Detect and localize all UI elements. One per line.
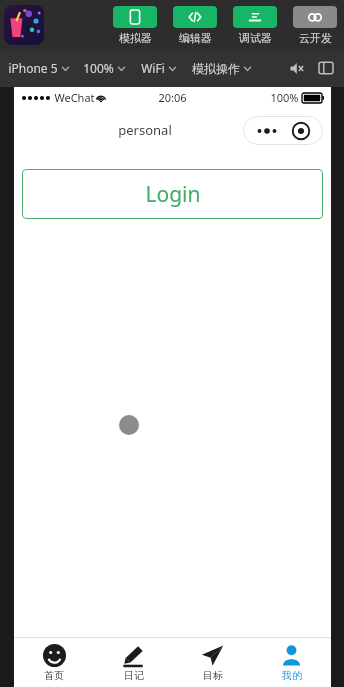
staticText: WeChat <box>54 90 95 105</box>
staticText: 模拟操作 <box>192 61 240 76</box>
button[interactable]: 100% <box>81 56 127 80</box>
staticText: 100% <box>83 60 114 76</box>
staticText: 编辑器 <box>179 31 212 45</box>
button[interactable]: 云开发 <box>288 4 342 45</box>
button[interactable]: iPhone 5 <box>6 56 71 80</box>
staticText: 日记 <box>124 669 144 682</box>
staticText: iPhone 5 <box>8 60 58 76</box>
staticText: 模拟器 <box>119 31 152 45</box>
staticText: 目标 <box>203 669 223 682</box>
button[interactable]: Login <box>22 169 323 219</box>
button[interactable]: 日记 <box>94 638 173 687</box>
staticText: Login <box>145 180 201 209</box>
button[interactable]: 目标 <box>173 638 252 687</box>
button[interactable]: 我的 <box>252 638 331 687</box>
button[interactable]: Menu and close <box>243 116 323 145</box>
staticText: personal <box>118 121 172 139</box>
button[interactable]: Toggle panel <box>314 56 338 80</box>
button[interactable]: WiFi <box>139 56 178 80</box>
staticText: WiFi <box>141 60 165 76</box>
staticText: 我的 <box>282 669 302 682</box>
button[interactable]: App logo <box>4 5 44 45</box>
staticText: 100% <box>270 90 299 105</box>
button[interactable]: 模拟操作 <box>190 57 253 80</box>
button[interactable]: 调试器 <box>228 4 282 45</box>
staticText: 20:06 <box>158 90 187 105</box>
staticText: 调试器 <box>239 31 272 45</box>
button[interactable]: 首页 <box>14 638 94 687</box>
button[interactable]: 模拟器 <box>108 4 162 45</box>
button[interactable]: 编辑器 <box>168 4 222 45</box>
staticText: 云开发 <box>299 31 332 45</box>
staticText: 首页 <box>44 669 64 682</box>
button[interactable]: Mute <box>284 56 308 80</box>
